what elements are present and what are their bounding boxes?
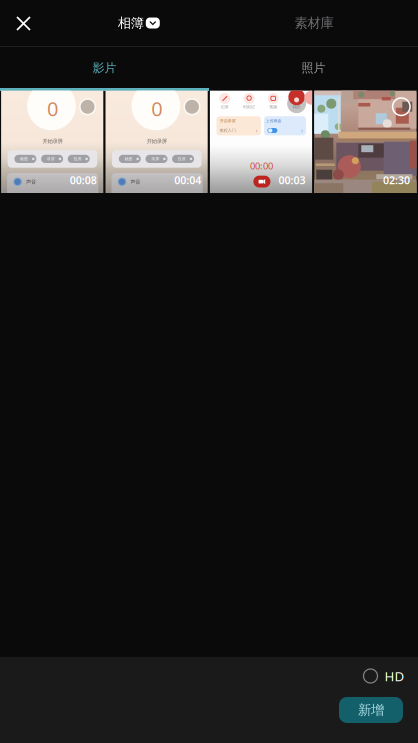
button[interactable]: 记录	[210, 91, 312, 193]
staticText: ›	[255, 126, 257, 135]
staticText: 00:03	[279, 173, 306, 187]
button[interactable]: 新增	[339, 697, 403, 723]
staticText: 相簿	[118, 15, 144, 31]
staticText: 0	[47, 95, 58, 122]
staticText: 视频	[269, 104, 277, 109]
button[interactable]: HD	[358, 662, 409, 690]
staticText: 截图	[124, 156, 132, 161]
staticText: 记录	[221, 104, 229, 109]
staticText: 声音	[130, 179, 140, 185]
button[interactable]: Close	[1, 1, 45, 45]
staticText: 截图	[20, 156, 28, 161]
staticText: HD	[384, 667, 404, 685]
staticText: 投屏	[178, 156, 186, 161]
staticText: 照片	[301, 61, 325, 75]
staticText: 素材庫	[294, 15, 333, 31]
staticText: 02:30	[383, 173, 410, 187]
button[interactable]: 02:30	[314, 91, 416, 193]
button[interactable]: 素材庫	[287, 8, 340, 38]
staticText: 00:04	[174, 173, 201, 187]
staticText: 教程入门	[220, 128, 236, 133]
staticText: 录屏	[151, 156, 159, 161]
staticText: 上传网盘	[265, 118, 281, 123]
staticText: 时刻记	[243, 104, 255, 109]
staticText: 00:08	[70, 173, 97, 187]
staticText: 00:00	[250, 160, 273, 172]
button[interactable]: 照片	[209, 47, 418, 89]
staticText: 影片	[92, 61, 116, 75]
staticText: 投屏	[73, 156, 81, 161]
staticText: 新增	[358, 702, 384, 718]
button[interactable]: 相簿	[111, 8, 167, 38]
staticText: 开启录屏	[220, 118, 236, 123]
button[interactable]: 0	[105, 91, 208, 193]
staticText: 我的	[293, 104, 301, 109]
staticText: ›	[301, 126, 303, 135]
staticText: 0	[151, 95, 162, 122]
staticText: 录屏	[47, 156, 55, 161]
staticText: 声音	[26, 179, 36, 185]
staticText: 开始录屏	[42, 138, 62, 145]
staticText: 开始录屏	[147, 138, 167, 145]
button[interactable]: 影片	[0, 47, 209, 89]
button[interactable]: 0	[1, 91, 103, 193]
